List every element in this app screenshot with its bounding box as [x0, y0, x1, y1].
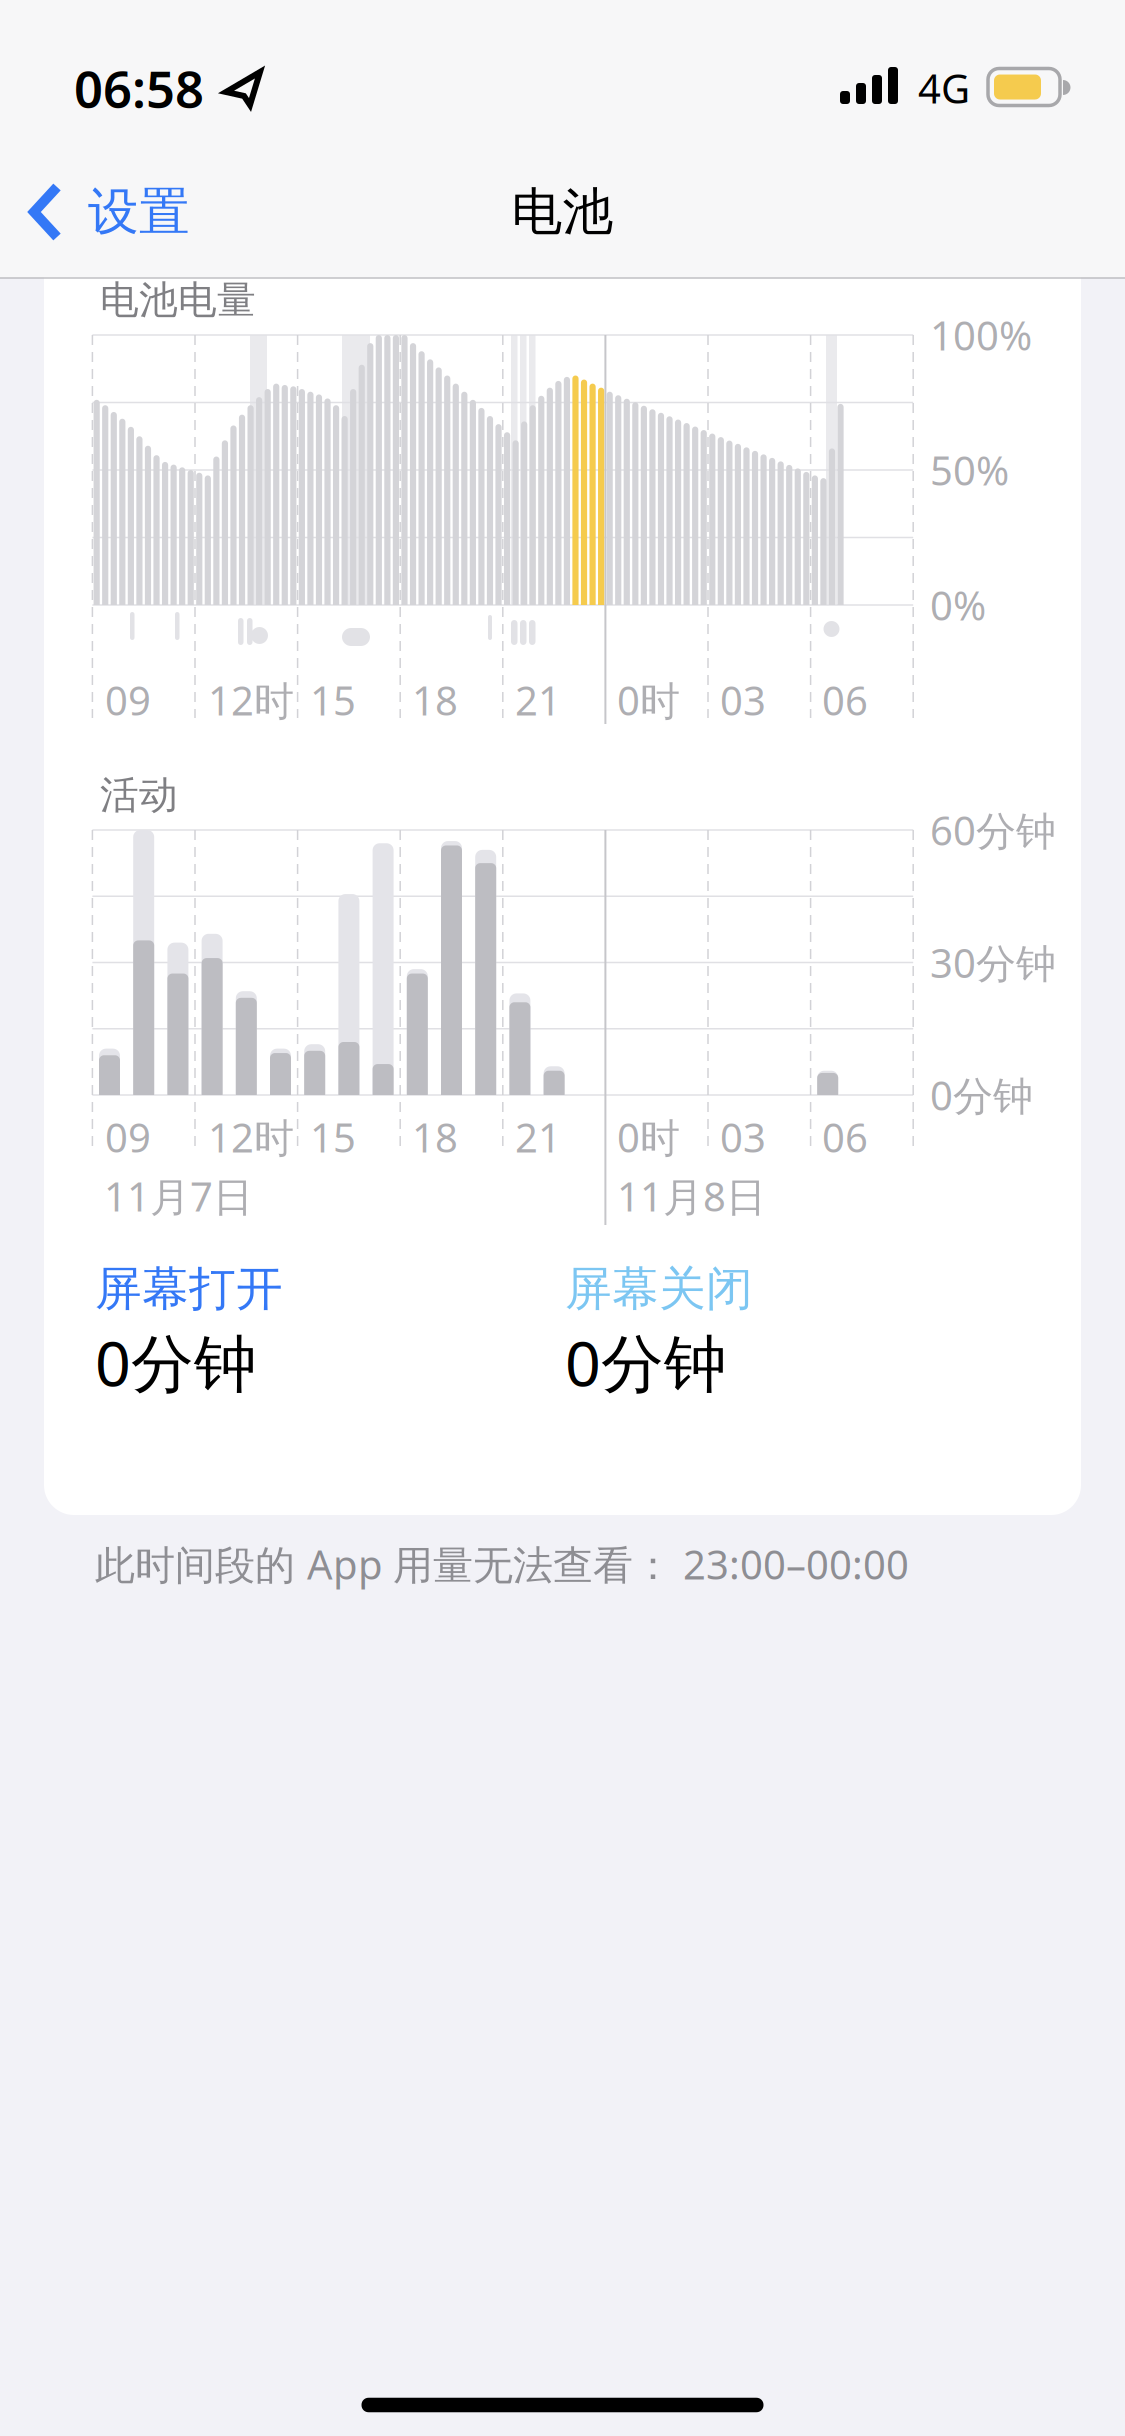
- staticText: 50%: [930, 443, 1009, 496]
- staticText: 18: [412, 1110, 458, 1163]
- button[interactable]: 设置: [0, 0, 300, 146]
- staticText: 06: [822, 1110, 868, 1163]
- staticText: 电池: [511, 181, 613, 243]
- staticText: 0%: [930, 578, 986, 631]
- staticText: 0分钟: [565, 1320, 727, 1404]
- staticText: 100%: [930, 308, 1032, 361]
- staticText: 06: [822, 673, 868, 726]
- staticText: 设置: [88, 181, 190, 243]
- staticText: 11月7日: [104, 1169, 253, 1222]
- staticText: 电池电量: [100, 276, 256, 324]
- staticText: 15: [310, 1110, 356, 1163]
- staticText: 屏幕关闭: [565, 1260, 753, 1318]
- staticText: 18: [412, 673, 458, 726]
- staticText: 12时: [208, 1110, 294, 1163]
- staticText: 06:58: [74, 54, 204, 122]
- staticText: 屏幕打开: [95, 1260, 283, 1318]
- staticText: 15: [310, 673, 356, 726]
- staticText: 30分钟: [930, 936, 1056, 989]
- staticText: 03: [720, 673, 766, 726]
- staticText: 4G: [918, 61, 970, 114]
- staticText: 活动: [100, 771, 178, 819]
- staticText: 0时: [617, 673, 680, 726]
- staticText: 03: [720, 1110, 766, 1163]
- staticText: 09: [105, 1110, 151, 1163]
- staticText: 0时: [617, 1110, 680, 1163]
- staticText: 此时间段的 App 用量无法查看： 23:00–00:00: [95, 1537, 909, 1590]
- staticText: 0分钟: [930, 1068, 1033, 1121]
- staticText: 60分钟: [930, 803, 1056, 856]
- staticText: 09: [105, 673, 151, 726]
- staticText: 11月8日: [617, 1169, 766, 1222]
- staticText: 21: [515, 1110, 561, 1163]
- staticText: 0分钟: [95, 1320, 257, 1404]
- staticText: 12时: [208, 673, 294, 726]
- staticText: 21: [515, 673, 561, 726]
